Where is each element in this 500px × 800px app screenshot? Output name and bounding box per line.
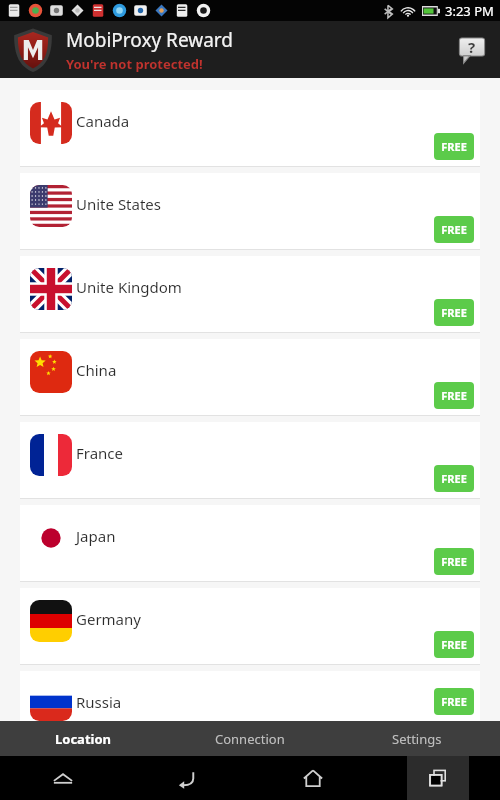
button[interactable]: China bbox=[20, 339, 480, 415]
staticText: FREE bbox=[441, 471, 467, 486]
staticText: FREE bbox=[441, 388, 467, 403]
button[interactable]: Home bbox=[250, 756, 375, 800]
staticText: China bbox=[76, 360, 117, 380]
staticText: Germany bbox=[76, 609, 141, 629]
button[interactable]: Back bbox=[125, 756, 250, 800]
staticText: Connection bbox=[215, 730, 285, 748]
staticText: FREE bbox=[441, 554, 467, 569]
staticText: Unite States bbox=[76, 194, 162, 214]
button[interactable]: Help bbox=[454, 32, 490, 68]
button[interactable]: Connection bbox=[166, 721, 333, 756]
button[interactable]: FREE bbox=[434, 548, 474, 575]
staticText: Russia bbox=[76, 692, 122, 712]
button[interactable]: France bbox=[20, 422, 480, 498]
staticText: France bbox=[76, 443, 124, 463]
button[interactable]: Unite States bbox=[20, 173, 480, 249]
button[interactable]: Recents bbox=[416, 756, 460, 800]
button[interactable]: Germany bbox=[20, 588, 480, 664]
button[interactable]: FREE bbox=[434, 382, 474, 409]
button[interactable]: Unite Kingdom bbox=[20, 256, 480, 332]
staticText: FREE bbox=[441, 139, 467, 154]
staticText: 3:23 PM bbox=[445, 2, 494, 20]
button[interactable]: Canada bbox=[20, 90, 480, 166]
staticText: Unite Kingdom bbox=[76, 277, 182, 297]
staticText: Location bbox=[55, 730, 111, 748]
staticText: Japan bbox=[76, 526, 116, 546]
staticText: Canada bbox=[76, 111, 130, 131]
button[interactable]: FREE bbox=[434, 631, 474, 658]
button[interactable]: FREE bbox=[434, 688, 474, 715]
staticText: FREE bbox=[441, 222, 467, 237]
staticText: FREE bbox=[441, 637, 467, 652]
button[interactable]: Menu bbox=[0, 756, 125, 800]
staticText: ? bbox=[468, 37, 476, 57]
staticText: FREE bbox=[441, 694, 467, 709]
staticText: Settings bbox=[392, 730, 442, 748]
button[interactable]: Settings bbox=[333, 721, 500, 756]
button[interactable]: FREE bbox=[434, 133, 474, 160]
button[interactable]: FREE bbox=[434, 465, 474, 492]
button[interactable]: FREE bbox=[434, 299, 474, 326]
button[interactable]: Russia bbox=[20, 671, 480, 721]
staticText: You're not protected! bbox=[66, 55, 203, 73]
button[interactable]: FREE bbox=[434, 216, 474, 243]
staticText: MobiProxy Reward bbox=[66, 27, 233, 53]
button[interactable]: Location bbox=[0, 721, 166, 756]
button[interactable]: Japan bbox=[20, 505, 480, 581]
staticText: FREE bbox=[441, 305, 467, 320]
